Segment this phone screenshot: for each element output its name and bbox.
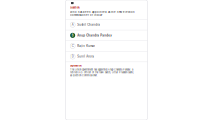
staticText: Explanation: [70,64,82,67]
staticText: A [72,23,74,26]
staticText: Question: [70,6,80,9]
button[interactable]: B [65,30,147,40]
staticText: Sushil Chandra [77,23,100,26]
button[interactable]: A [65,20,147,30]
staticText: B [72,34,74,37]
button[interactable]: Question icon [65,0,76,6]
button[interactable]: D [65,51,147,62]
staticText: The Union government has appointed Anup … [70,68,134,77]
staticText: Anup Chandra Pandey [77,34,112,37]
button[interactable]: C [65,41,147,51]
staticText: Who has been appointed as the new Electi… [70,10,135,17]
staticText: Sunil Arora [77,55,94,58]
staticText: Rajiv Kumar [77,44,95,48]
staticText: C [72,44,74,48]
staticText: D [72,55,74,58]
